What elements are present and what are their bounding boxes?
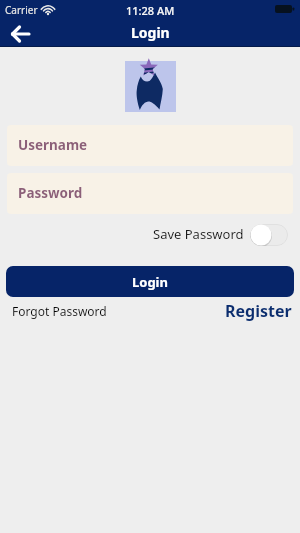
button[interactable]: [4, 20, 36, 47]
button[interactable]: Forgot Password: [12, 303, 107, 319]
button[interactable]: [250, 224, 288, 246]
staticText: Carrier: [5, 3, 38, 17]
staticText: Forgot Password: [12, 303, 107, 319]
staticText: Register: [225, 300, 292, 322]
staticText: 11:28 AM: [126, 3, 175, 18]
staticText: Login: [132, 273, 168, 291]
button[interactable]: Username: [7, 125, 293, 166]
button[interactable]: Password: [7, 173, 293, 214]
staticText: Username: [18, 136, 88, 154]
staticText: Login: [131, 23, 170, 42]
staticText: Password: [18, 184, 83, 202]
staticText: Save Password: [153, 225, 244, 243]
button[interactable]: Login: [6, 266, 294, 297]
button[interactable]: Register: [225, 300, 292, 322]
